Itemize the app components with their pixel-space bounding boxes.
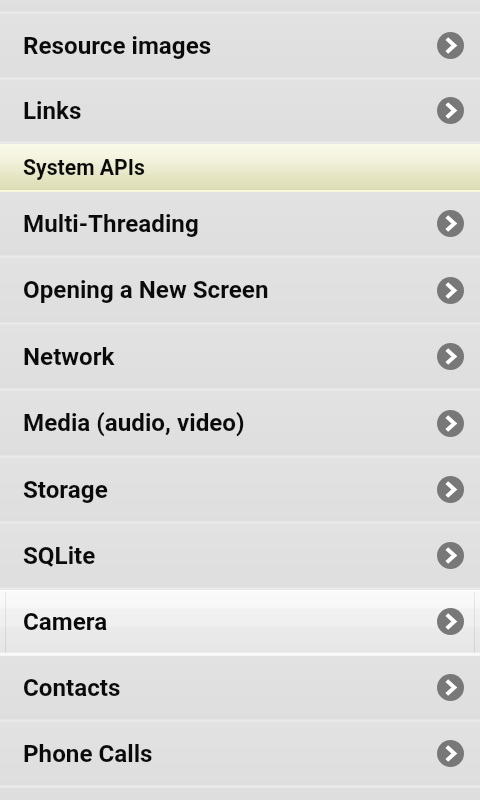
other: Open Storage — [437, 476, 464, 503]
button[interactable]: Media (audio, video) — [0, 391, 480, 458]
button[interactable]: Contacts — [0, 656, 480, 722]
button[interactable]: System APIs — [0, 144, 480, 192]
staticText: SQLite — [23, 542, 429, 570]
button[interactable]: Phone Calls — [0, 722, 480, 788]
button[interactable]: SQLite — [0, 524, 480, 590]
staticText: Media (audio, video) — [23, 409, 429, 437]
button[interactable]: Links — [0, 80, 480, 144]
staticText: Resource images — [23, 32, 429, 60]
button[interactable]: Opening a New Screen — [0, 258, 480, 325]
button[interactable]: Network — [0, 325, 480, 391]
other: Open Phone Calls — [437, 740, 464, 767]
staticText: Phone Calls — [23, 740, 429, 768]
button[interactable]: Resource images — [0, 14, 480, 80]
other: Open Network — [437, 343, 464, 370]
button[interactable]: Multi-Threading — [0, 192, 480, 258]
button[interactable]: Storage — [0, 458, 480, 524]
staticText: Links — [23, 97, 429, 125]
staticText: Storage — [23, 476, 429, 504]
other: Open Camera — [437, 608, 464, 635]
other: Open SQLite — [437, 542, 464, 569]
staticText: System APIs — [23, 155, 145, 180]
staticText: Contacts — [23, 674, 429, 702]
other: Open Multi-Threading — [437, 210, 464, 237]
other: Open Media (audio, video) — [437, 410, 464, 437]
staticText: Multi-Threading — [23, 210, 429, 238]
other: Open Resource images — [437, 32, 464, 59]
staticText: Camera — [23, 608, 429, 636]
other: Open Opening a New Screen — [437, 277, 464, 304]
button[interactable]: Camera — [0, 590, 480, 656]
other: Open Links — [437, 97, 464, 124]
staticText: Network — [23, 343, 429, 371]
staticText: Opening a New Screen — [23, 276, 429, 304]
other: Open Contacts — [437, 674, 464, 701]
